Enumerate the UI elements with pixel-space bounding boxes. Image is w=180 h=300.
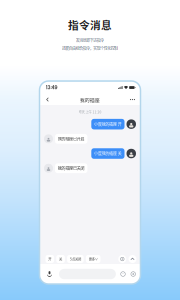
staticText: 小度我的插座 关 [94, 151, 122, 156]
staticText: 更多∨ [89, 257, 98, 261]
button[interactable]: Voice input [44, 269, 54, 279]
button[interactable]: Emoji [119, 270, 127, 278]
staticText: 发消息即下达指令 [76, 37, 104, 43]
button[interactable]: Settings [118, 255, 126, 263]
staticText: 我的插座 [80, 96, 100, 103]
button[interactable]: Back [43, 95, 51, 104]
button[interactable]: Collapse [128, 255, 136, 263]
button[interactable]: 开 [45, 255, 54, 263]
staticText: 开 [48, 257, 51, 261]
button[interactable]: 5点关闭 [67, 255, 84, 263]
button[interactable]: 关 [56, 255, 65, 263]
staticText: 指令消息 [68, 17, 112, 32]
staticText: 13:49 [45, 85, 57, 90]
staticText: 5点关闭 [70, 257, 81, 261]
staticText: 昨天 上午 11:20 [78, 109, 101, 114]
staticText: 还能自由组合指令，实现个性化控制 [62, 45, 118, 51]
button[interactable]: More options [129, 270, 137, 278]
button[interactable]: More [128, 95, 136, 104]
staticText: 关 [59, 257, 62, 261]
staticText: 我的插座已开启 [58, 136, 85, 142]
staticText: 小度我的插座 开 [94, 121, 122, 127]
staticText: 我的插座已关闭 [58, 165, 85, 171]
button[interactable]: 更多∨ [86, 255, 100, 263]
